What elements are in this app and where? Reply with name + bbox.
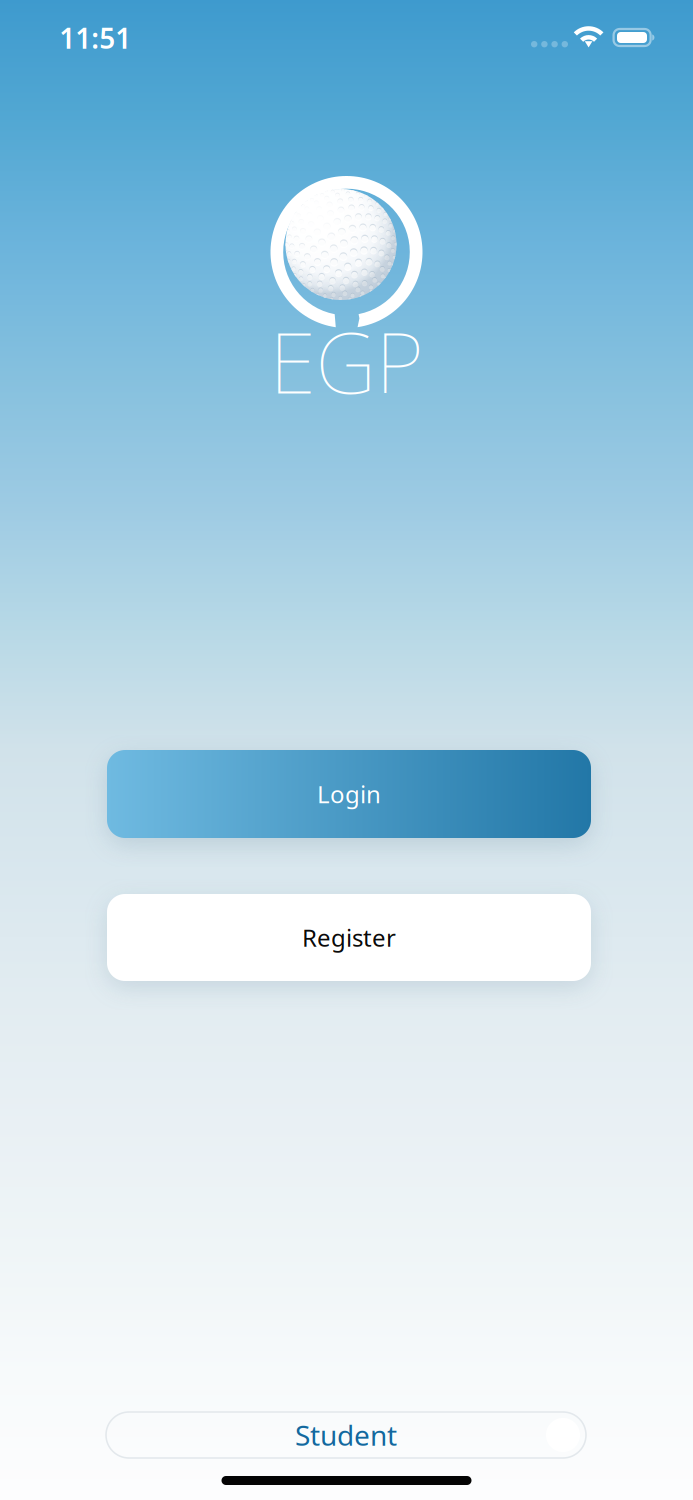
staticText: 11:51 [59, 19, 131, 57]
staticText: Student [295, 1416, 397, 1454]
button[interactable]: Register [107, 894, 591, 981]
staticText: EGP [269, 305, 423, 417]
button[interactable]: Login [107, 750, 591, 838]
staticText: Login [317, 778, 381, 810]
staticText: Register [302, 922, 396, 953]
button[interactable]: Student [106, 1412, 586, 1458]
